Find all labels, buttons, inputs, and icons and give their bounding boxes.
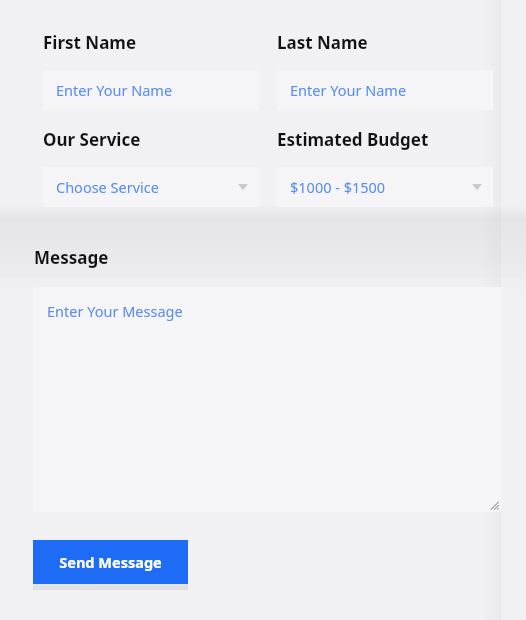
staticText: Estimated Budget [277, 128, 429, 151]
staticText: Last Name [277, 31, 368, 54]
button[interactable]: Enter Your Name [277, 70, 493, 110]
button[interactable]: Enter Your Message [33, 287, 501, 512]
button[interactable]: Enter Your Name [43, 70, 259, 110]
staticText: First Name [43, 31, 137, 54]
staticText: Send Message [59, 552, 162, 572]
staticText: Choose Service [56, 177, 159, 197]
staticText: Message [34, 246, 109, 269]
staticText: Enter Your Name [56, 80, 173, 100]
staticText: $1000 - $1500 [290, 177, 386, 197]
button[interactable]: Choose Service [43, 167, 259, 207]
staticText: Our Service [43, 128, 141, 151]
button[interactable]: Send Message [33, 540, 188, 584]
staticText: Enter Your Name [290, 80, 407, 100]
staticText: Enter Your Message [47, 301, 183, 321]
button[interactable]: $1000 - $1500 [277, 167, 493, 207]
